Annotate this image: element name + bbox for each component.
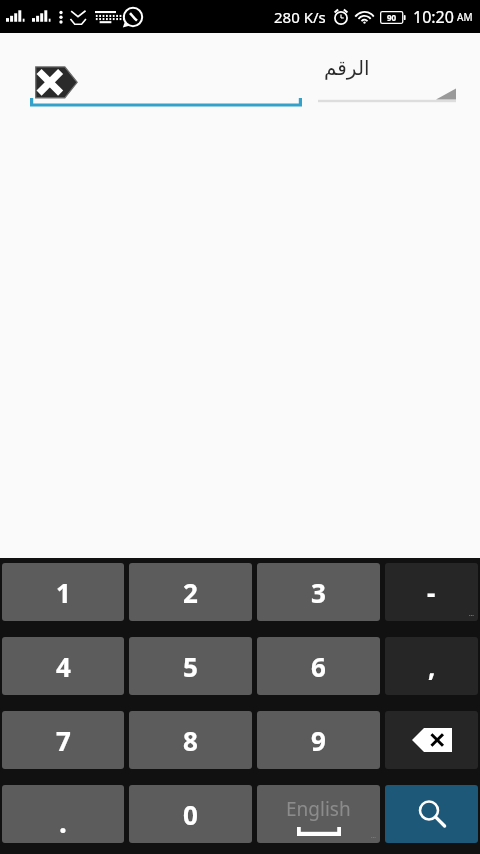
staticText: 8	[183, 723, 198, 758]
staticText: .	[59, 803, 67, 841]
button[interactable]: 4	[2, 637, 124, 695]
button[interactable]: Search	[385, 785, 478, 843]
button[interactable]: الرقم	[318, 55, 456, 103]
staticText: 2	[183, 575, 198, 610]
staticText: AM	[457, 10, 473, 24]
button[interactable]: English	[257, 785, 380, 843]
staticText: -	[427, 575, 436, 610]
button[interactable]: ,	[385, 637, 478, 695]
staticText: 3	[311, 575, 326, 610]
button[interactable]: Backspace	[385, 711, 478, 769]
button[interactable]: 1	[2, 563, 124, 621]
staticText: 0	[183, 797, 198, 832]
button[interactable]: 3	[257, 563, 380, 621]
staticText: English	[286, 796, 351, 822]
staticText: 6	[311, 649, 326, 684]
button[interactable]: 2	[129, 563, 252, 621]
button[interactable]: Clear	[34, 64, 78, 100]
button[interactable]: 0	[129, 785, 252, 843]
staticText: 5	[183, 649, 198, 684]
staticText: ...	[371, 832, 376, 840]
staticText: الرقم	[324, 56, 370, 79]
staticText: 1	[56, 575, 71, 610]
staticText: 7	[56, 723, 71, 758]
staticText: 280 K/s	[274, 7, 326, 27]
button[interactable]: 6	[257, 637, 380, 695]
staticText: 9	[311, 723, 326, 758]
button[interactable]: 5	[129, 637, 252, 695]
staticText: 4	[56, 649, 71, 684]
staticText: ...	[469, 610, 474, 618]
button[interactable]: .	[2, 785, 124, 843]
button[interactable]: 8	[129, 711, 252, 769]
staticText: 90	[387, 12, 397, 23]
button[interactable]: 7	[2, 711, 124, 769]
staticText: 10:20	[413, 6, 454, 28]
staticText: ,	[428, 649, 436, 684]
button[interactable]: -	[385, 563, 478, 621]
button[interactable]: 9	[257, 711, 380, 769]
button[interactable]: Clear	[30, 61, 302, 109]
